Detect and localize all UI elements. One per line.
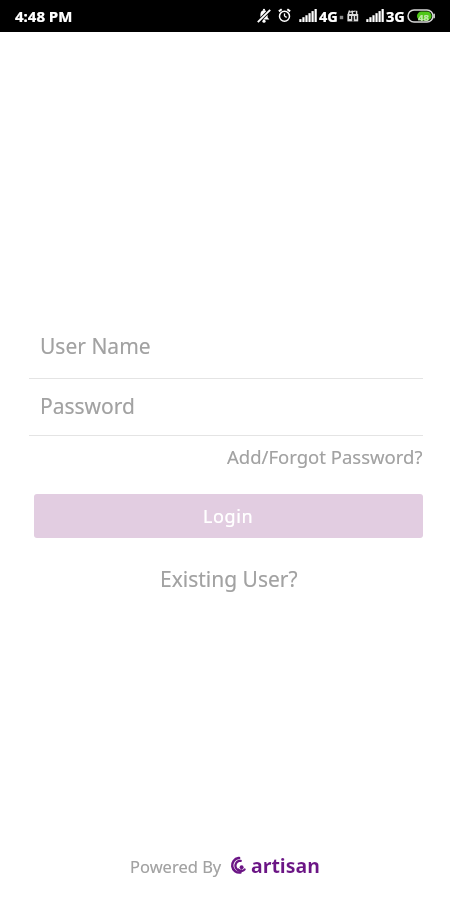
other: Alarm set — [277, 8, 292, 23]
other: Vibrate off — [256, 8, 272, 24]
staticText: Existing User? — [160, 565, 298, 594]
button[interactable]: Existing User? — [34, 561, 423, 593]
button[interactable]: Add/Forgot Password? — [29, 443, 423, 469]
staticText: User Name — [40, 332, 151, 361]
staticText: 3G — [386, 6, 405, 26]
staticText: Add/Forgot Password? — [227, 444, 423, 469]
staticText: 4:48 PM — [15, 6, 73, 26]
other: Signal strength SIM 1 — [299, 9, 317, 22]
button[interactable]: Password — [29, 392, 423, 436]
other: artisan logo — [231, 856, 251, 876]
staticText: Login — [203, 504, 254, 529]
staticText: Powered By — [130, 855, 222, 877]
staticText: Password — [40, 392, 135, 421]
other: Signal strength SIM 2 — [366, 9, 384, 22]
other: Battery 48 percent — [407, 8, 435, 24]
staticText: artisan — [251, 852, 320, 879]
staticText: 4G — [319, 6, 338, 26]
button[interactable]: User Name — [29, 332, 423, 379]
staticText: 48 — [418, 11, 429, 24]
button[interactable]: Login — [34, 494, 423, 538]
other: VoLTE off — [345, 8, 361, 24]
